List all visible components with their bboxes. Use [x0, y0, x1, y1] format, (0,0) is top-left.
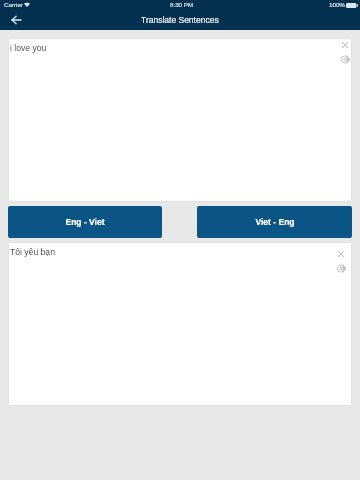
button[interactable]: Clear text	[338, 38, 352, 52]
staticText: Viet - Eng	[255, 217, 295, 226]
button[interactable]: Eng - Viet	[8, 206, 162, 238]
staticText: i love you	[10, 43, 47, 53]
staticText: 100%	[329, 1, 345, 8]
staticText: Carrier	[4, 1, 23, 8]
button[interactable]: Speak	[334, 261, 348, 275]
staticText: Translate Sentences	[141, 15, 219, 24]
button[interactable]: Clear text	[334, 247, 348, 261]
staticText: Tôi yêu bạn	[10, 247, 55, 257]
button[interactable]: Speak	[338, 52, 352, 66]
staticText: 8:30 PM	[170, 1, 194, 8]
button[interactable]: Viet - Eng	[197, 206, 352, 238]
button[interactable]: Back	[4, 12, 28, 28]
staticText: Eng - Viet	[65, 217, 105, 226]
